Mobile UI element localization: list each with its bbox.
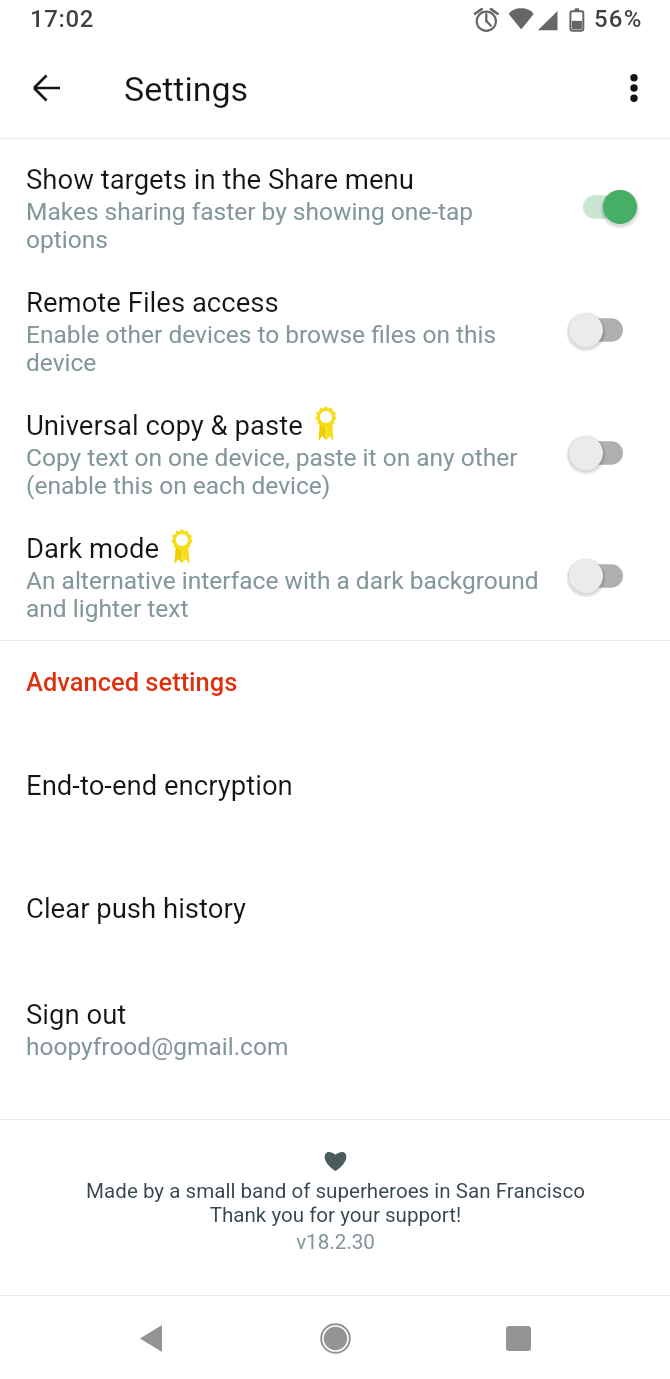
staticText: Clear push history (26, 892, 247, 924)
button[interactable]: Recents (487, 1307, 549, 1369)
button[interactable]: Home (304, 1307, 366, 1369)
staticText: Advanced settings (26, 667, 238, 697)
button[interactable]: More options (602, 56, 666, 120)
staticText: An alternative interface with a dark bac… (26, 566, 539, 595)
staticText: (enable this on each device) (26, 471, 331, 500)
staticText: hoopyfrood@gmail.com (26, 1032, 289, 1061)
staticText: Show targets in the Share menu (26, 163, 414, 195)
staticText: 17:02 (30, 5, 94, 33)
staticText: Copy text on one device, paste it on any… (26, 443, 518, 472)
staticText: End-to-end encryption (26, 769, 293, 801)
staticText: Dark mode (26, 532, 159, 564)
button[interactable]: Advanced settings (0, 641, 670, 745)
staticText: v18.2.30 (296, 1230, 375, 1254)
staticText: Settings (124, 69, 249, 109)
button[interactable]: Show targets in the Share menu (0, 139, 670, 262)
button[interactable]: Dark mode (0, 508, 670, 640)
button[interactable]: Enabled (555, 177, 645, 237)
button[interactable]: Back (120, 1307, 182, 1369)
staticText: 56% (594, 5, 643, 33)
staticText: Makes sharing faster by showing one-tap (26, 197, 474, 226)
staticText: Remote Files access (26, 286, 279, 318)
button[interactable]: Disabled (555, 300, 645, 360)
staticText: Enable other devices to browse files on … (26, 320, 497, 349)
button[interactable]: Back (15, 56, 79, 120)
staticText: Sign out (26, 998, 127, 1030)
staticText: Made by a small band of superheroes in S… (86, 1179, 585, 1227)
button[interactable]: Clear push history (0, 868, 670, 974)
button[interactable]: End-to-end encryption (0, 745, 670, 868)
button[interactable]: Sign out (0, 974, 670, 1068)
button[interactable]: Disabled (555, 423, 645, 483)
button[interactable]: Universal copy & paste (0, 385, 670, 508)
button[interactable]: Disabled (555, 546, 645, 606)
button[interactable]: Remote Files access (0, 262, 670, 385)
staticText: and lighter text (26, 594, 189, 623)
staticText: options (26, 225, 108, 254)
staticText: Universal copy & paste (26, 409, 303, 441)
staticText: device (26, 348, 97, 377)
